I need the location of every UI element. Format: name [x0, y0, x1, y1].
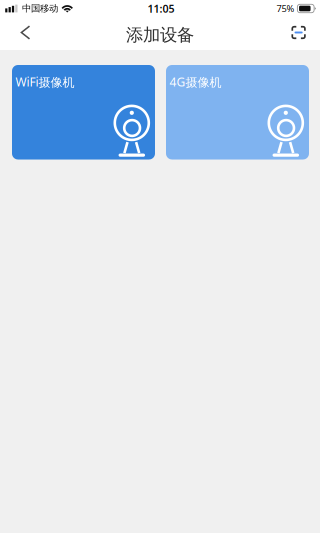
staticText: 75%: [276, 2, 294, 15]
staticText: WiFi摄像机: [15, 74, 74, 90]
staticText: 4G摄像机: [169, 74, 221, 90]
button[interactable]: Scan QR code: [262, 17, 306, 50]
staticText: 中国移动: [22, 3, 58, 14]
button[interactable]: Back: [15, 17, 59, 50]
staticText: 添加设备: [126, 24, 194, 46]
staticText: 11:05: [147, 1, 174, 16]
button[interactable]: 4G摄像机: [166, 65, 309, 159]
button[interactable]: WiFi摄像机: [12, 65, 155, 159]
